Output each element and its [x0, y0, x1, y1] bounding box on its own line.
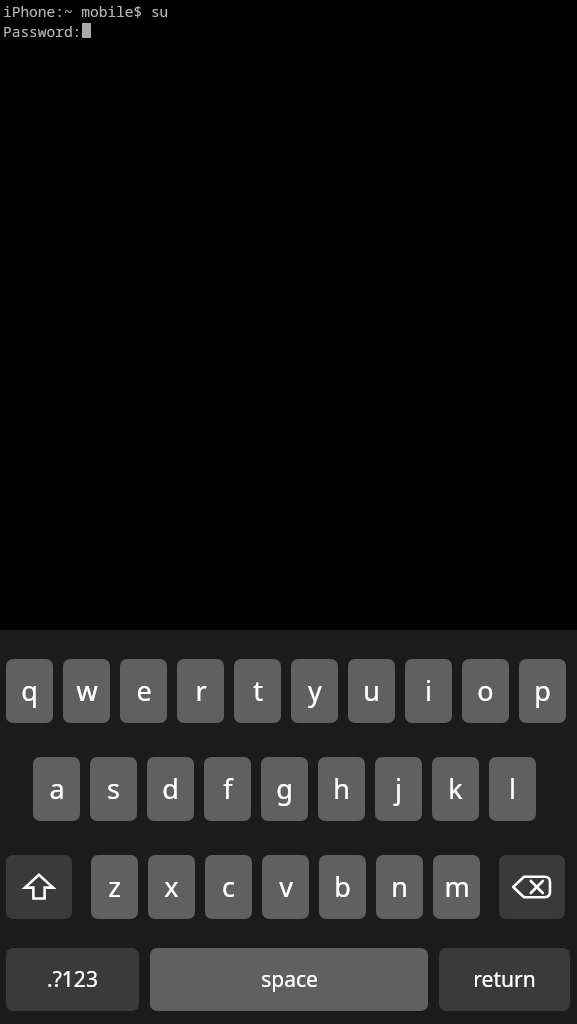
- button[interactable]: r: [177, 659, 224, 723]
- staticText: iPhone:~ mobile$ su: [3, 1, 169, 21]
- staticText: i: [425, 672, 432, 709]
- staticText: t: [253, 672, 263, 709]
- staticText: a: [49, 770, 65, 807]
- staticText: .?123: [47, 965, 98, 994]
- button[interactable]: u: [348, 659, 395, 723]
- staticText: d: [162, 770, 179, 807]
- staticText: m: [444, 868, 470, 905]
- button[interactable]: g: [261, 757, 308, 821]
- staticText: l: [509, 770, 516, 807]
- button[interactable]: q: [6, 659, 53, 723]
- button[interactable]: z: [91, 855, 138, 919]
- button[interactable]: t: [234, 659, 281, 723]
- staticText: Password:: [3, 21, 82, 41]
- staticText: v: [279, 868, 293, 905]
- button[interactable]: Backspace: [499, 855, 565, 919]
- button[interactable]: n: [376, 855, 423, 919]
- staticText: k: [448, 770, 463, 807]
- button[interactable]: m: [433, 855, 480, 919]
- staticText: s: [107, 770, 120, 807]
- button[interactable]: space: [150, 948, 428, 1011]
- button[interactable]: .?123: [6, 948, 139, 1011]
- staticText: h: [333, 770, 350, 807]
- button[interactable]: j: [375, 757, 422, 821]
- button[interactable]: a: [33, 757, 80, 821]
- staticText: n: [391, 868, 408, 905]
- staticText: e: [136, 672, 152, 709]
- staticText: g: [276, 770, 293, 807]
- staticText: w: [76, 672, 98, 709]
- staticText: z: [108, 868, 121, 905]
- button[interactable]: o: [462, 659, 509, 723]
- staticText: b: [334, 868, 351, 905]
- button[interactable]: l: [489, 757, 536, 821]
- staticText: x: [164, 868, 179, 905]
- button[interactable]: b: [319, 855, 366, 919]
- button[interactable]: s: [90, 757, 137, 821]
- staticText: return: [473, 965, 536, 994]
- button[interactable]: x: [148, 855, 195, 919]
- staticText: y: [308, 672, 322, 709]
- staticText: r: [195, 672, 207, 709]
- staticText: o: [477, 672, 494, 709]
- staticText: j: [395, 770, 402, 807]
- staticText: u: [363, 672, 380, 709]
- button[interactable]: y: [291, 659, 338, 723]
- button[interactable]: k: [432, 757, 479, 821]
- button[interactable]: p: [519, 659, 566, 723]
- button[interactable]: d: [147, 757, 194, 821]
- button[interactable]: return: [439, 948, 570, 1011]
- button[interactable]: h: [318, 757, 365, 821]
- button[interactable]: i: [405, 659, 452, 723]
- button[interactable]: v: [262, 855, 309, 919]
- staticText: c: [222, 868, 235, 905]
- button[interactable]: e: [120, 659, 167, 723]
- staticText: f: [223, 770, 233, 807]
- staticText: q: [21, 672, 38, 709]
- button[interactable]: w: [63, 659, 110, 723]
- staticText: space: [261, 965, 318, 994]
- button[interactable]: Shift: [6, 855, 72, 919]
- button[interactable]: c: [205, 855, 252, 919]
- staticText: p: [534, 672, 551, 709]
- button[interactable]: f: [204, 757, 251, 821]
